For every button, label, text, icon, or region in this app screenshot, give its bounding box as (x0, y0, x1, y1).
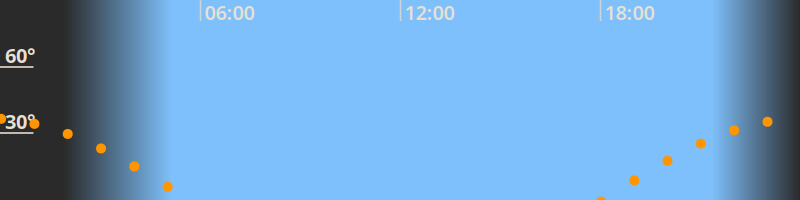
staticText: 60° (5, 42, 35, 69)
staticText: 12:00 (404, 0, 454, 26)
staticText: 30° (5, 108, 35, 135)
button[interactable]: Hourly temperature chart (0, 0, 800, 200)
staticText: 06:00 (204, 0, 254, 26)
staticText: 18:00 (604, 0, 654, 26)
